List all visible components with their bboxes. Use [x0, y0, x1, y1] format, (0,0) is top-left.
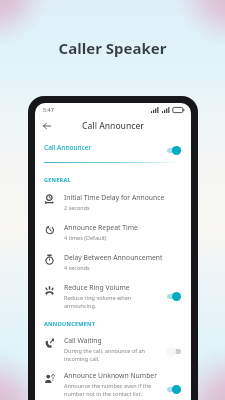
staticText: 2 seconds: [64, 204, 90, 211]
button[interactable]: Call Waiting: [35, 335, 191, 363]
staticText: Announce Repeat Time: [64, 223, 138, 232]
staticText: Reduce Ring Volume: [64, 283, 130, 292]
button[interactable]: Reduce Ring Volume: [35, 282, 191, 310]
staticText: Initial Time Delay for Announce: [64, 193, 165, 202]
button[interactable]: Delay Between Announcement: [35, 252, 191, 274]
staticText: Delay Between Announcement: [64, 253, 163, 262]
staticText: 4 seconds: [64, 264, 90, 271]
staticText: Announce Unknown Number: [64, 371, 157, 380]
staticText: Call Announcer: [44, 143, 92, 152]
staticText: number not in the contact list.: [64, 390, 142, 397]
button[interactable]: Call Announcer: [35, 139, 191, 155]
staticText: GENERAL: [44, 176, 71, 183]
button[interactable]: Initial Time Delay for Announce: [35, 192, 191, 214]
staticText: Reduce ring volume when: [64, 294, 132, 301]
staticText: incoming call.: [64, 355, 100, 362]
staticText: 5:47: [43, 106, 54, 113]
button[interactable]: Back: [39, 118, 54, 133]
staticText: 4 times (Default): [64, 234, 107, 241]
staticText: Call Waiting: [64, 336, 102, 345]
staticText: Announce the number, even if the: [64, 382, 152, 389]
staticText: announcing.: [64, 302, 97, 309]
staticText: Caller Speaker: [0, 38, 225, 58]
staticText: During the call, announce of an: [64, 347, 146, 354]
button[interactable]: Announce Unknown Number: [35, 370, 191, 398]
staticText: ANNOUNCEMENT: [44, 320, 96, 327]
button[interactable]: Announce Repeat Time: [35, 222, 191, 244]
staticText: Call Announcer: [35, 120, 191, 132]
